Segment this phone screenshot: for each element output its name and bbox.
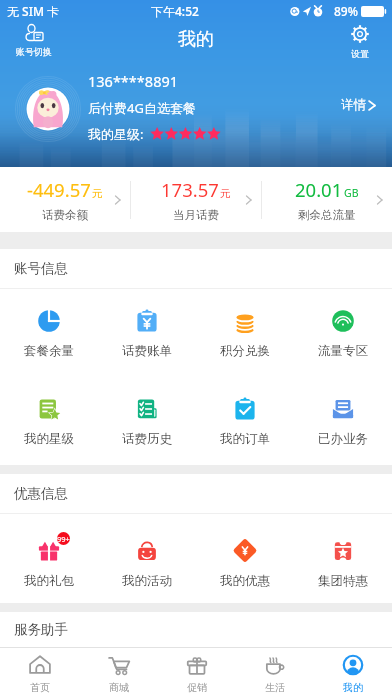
staticText: 促销 <box>187 681 207 694</box>
staticText: 99+ <box>57 534 70 544</box>
button[interactable]: 促销 <box>158 648 236 696</box>
button[interactable]: 173.57 <box>131 167 261 232</box>
staticText: 我的星级 <box>24 431 74 447</box>
staticText: 流量专区 <box>318 343 368 359</box>
button[interactable]: 我的活动 <box>98 539 196 589</box>
staticText: 元 <box>92 187 103 200</box>
button[interactable]: 已办业务 <box>294 397 392 447</box>
staticText: 话费历史 <box>122 431 172 447</box>
button[interactable]: 首页 <box>0 648 79 696</box>
button[interactable]: 生活 <box>236 648 314 696</box>
button[interactable]: 套餐余量 <box>0 309 98 359</box>
staticText: 设置 <box>351 48 369 59</box>
staticText: 后付费4G自选套餐 <box>88 99 196 117</box>
staticText: 173.57 <box>161 177 219 202</box>
button[interactable]: 我的星级 <box>0 397 98 447</box>
staticText: 136****8891 <box>88 71 179 91</box>
staticText: 我的订单 <box>220 431 270 447</box>
staticText: 服务助手 <box>14 621 68 638</box>
staticText: 首页 <box>30 681 50 694</box>
button[interactable]: 商城 <box>79 648 158 696</box>
staticText: GB <box>344 186 359 200</box>
staticText: 话费余额 <box>42 208 88 222</box>
staticText: 20.01 <box>295 177 343 202</box>
staticText: 元 <box>220 187 231 200</box>
staticText: 无 SIM 卡 <box>7 3 60 19</box>
staticText: 集团特惠 <box>318 573 368 589</box>
staticText: 积分兑换 <box>220 343 270 359</box>
staticText: 我的 <box>343 681 363 694</box>
staticText: 我的星级: <box>88 125 144 143</box>
button[interactable]: 我的 <box>314 648 392 696</box>
button[interactable]: 我的订单 <box>196 397 294 447</box>
staticText: -449.57 <box>27 177 91 202</box>
button[interactable]: 详情 <box>341 97 378 113</box>
staticText: 优惠信息 <box>14 485 68 502</box>
staticText: 生活 <box>265 681 285 694</box>
button[interactable]: 话费历史 <box>98 397 196 447</box>
button[interactable]: 20.01 <box>262 167 392 232</box>
button[interactable]: 集团特惠 <box>294 539 392 589</box>
staticText: 当月话费 <box>173 208 219 222</box>
staticText: 我的 <box>178 28 214 51</box>
staticText: 我的礼包 <box>24 573 74 589</box>
staticText: 剩余总流量 <box>298 208 356 222</box>
staticText: 我的活动 <box>122 573 172 589</box>
button[interactable]: 积分兑换 <box>196 309 294 359</box>
button[interactable]: -449.57 <box>0 167 130 232</box>
staticText: 下午4:52 <box>151 3 199 19</box>
staticText: 话费账单 <box>122 343 172 359</box>
button[interactable]: 流量专区 <box>294 309 392 359</box>
staticText: 账号切换 <box>16 46 52 57</box>
button[interactable]: 我的优惠 <box>196 539 294 589</box>
button[interactable]: 设置 <box>334 24 386 59</box>
staticText: 套餐余量 <box>24 343 74 359</box>
button[interactable]: 99+ <box>0 539 98 589</box>
staticText: 我的优惠 <box>220 573 270 589</box>
staticText: 详情 <box>341 97 366 113</box>
staticText: 账号信息 <box>14 260 68 277</box>
button[interactable]: 话费账单 <box>98 309 196 359</box>
staticText: 89% <box>334 3 358 19</box>
staticText: 商城 <box>109 681 129 694</box>
staticText: 已办业务 <box>318 431 368 447</box>
button[interactable]: 账号切换 <box>6 24 62 57</box>
